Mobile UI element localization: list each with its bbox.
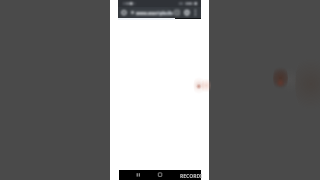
staticText: RECORDI xyxy=(180,173,203,180)
button[interactable]: More options xyxy=(191,8,200,17)
button[interactable]: Recording status xyxy=(177,170,201,180)
button[interactable]: Reload page xyxy=(120,8,129,17)
staticText: www.example.co xyxy=(136,10,173,16)
button[interactable]: Pause recording xyxy=(132,170,144,180)
staticText: /search xyxy=(157,10,173,16)
button[interactable]: Account xyxy=(182,8,191,17)
button[interactable]: Stop recording xyxy=(154,170,166,180)
button[interactable]: Switch tabs xyxy=(173,8,182,17)
button[interactable]: Search or type web address xyxy=(129,8,171,17)
